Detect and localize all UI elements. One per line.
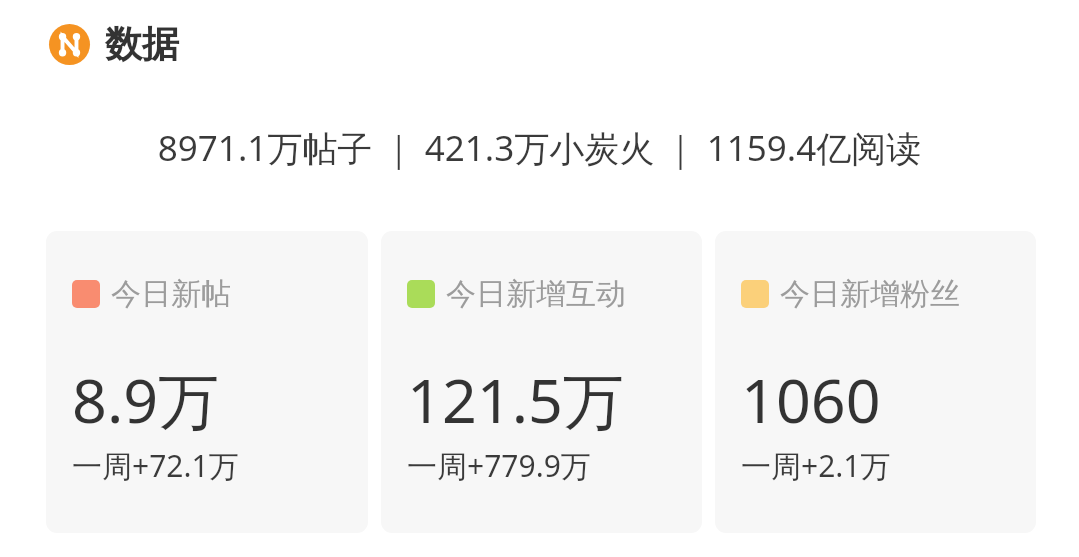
staticText: 数据 bbox=[105, 21, 179, 68]
staticText: 8.9万 bbox=[72, 358, 220, 441]
staticText: 一周+2.1万 bbox=[741, 445, 891, 486]
staticText: 一周+779.9万 bbox=[407, 445, 591, 486]
button[interactable]: 今日新增粉丝 bbox=[715, 231, 1036, 533]
button[interactable]: Data source logo bbox=[49, 21, 1079, 68]
staticText: 今日新增互动 bbox=[446, 275, 626, 313]
staticText: 1060 bbox=[741, 358, 881, 441]
other: Data source logo bbox=[49, 24, 90, 65]
staticText: 今日新帖 bbox=[111, 275, 231, 313]
staticText: 8971.1万帖子 ｜ 421.3万小炭火 ｜ 1159.4亿阅读 bbox=[0, 124, 1079, 172]
staticText: 今日新增粉丝 bbox=[780, 275, 960, 313]
button[interactable]: 今日新增互动 bbox=[381, 231, 702, 533]
staticText: 一周+72.1万 bbox=[72, 445, 239, 486]
staticText: 121.5万 bbox=[407, 358, 624, 441]
button[interactable]: 今日新帖 bbox=[46, 231, 368, 533]
